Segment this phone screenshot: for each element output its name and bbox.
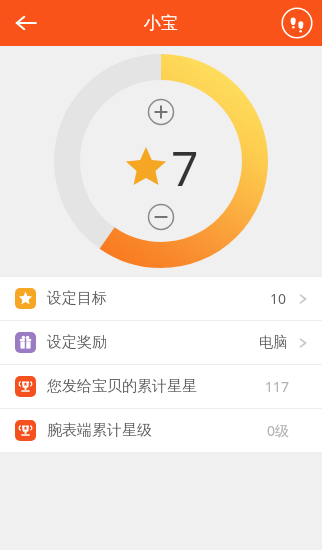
staticText: 设定目标 [47,289,107,308]
button[interactable]: 设定奖励 [0,321,322,364]
staticText: 7 [171,135,199,200]
staticText: 117 [265,377,290,396]
staticText: 小宝 [144,13,178,34]
staticText: 0级 [267,421,290,440]
staticText: 10 [270,289,287,308]
staticText: 电脑 [259,334,287,352]
button[interactable]: 您发给宝贝的累计星星 [0,365,322,408]
staticText: 设定奖励 [47,333,107,352]
button[interactable]: Steps [280,6,314,40]
button[interactable]: 腕表端累计星级 [0,409,322,452]
staticText: 腕表端累计星级 [47,421,152,440]
staticText: 您发给宝贝的累计星星 [47,377,197,396]
button[interactable]: 设定目标 [0,277,322,320]
button[interactable]: Add star [146,97,176,127]
button[interactable]: Remove star [146,202,176,232]
button[interactable]: Back [6,3,46,43]
